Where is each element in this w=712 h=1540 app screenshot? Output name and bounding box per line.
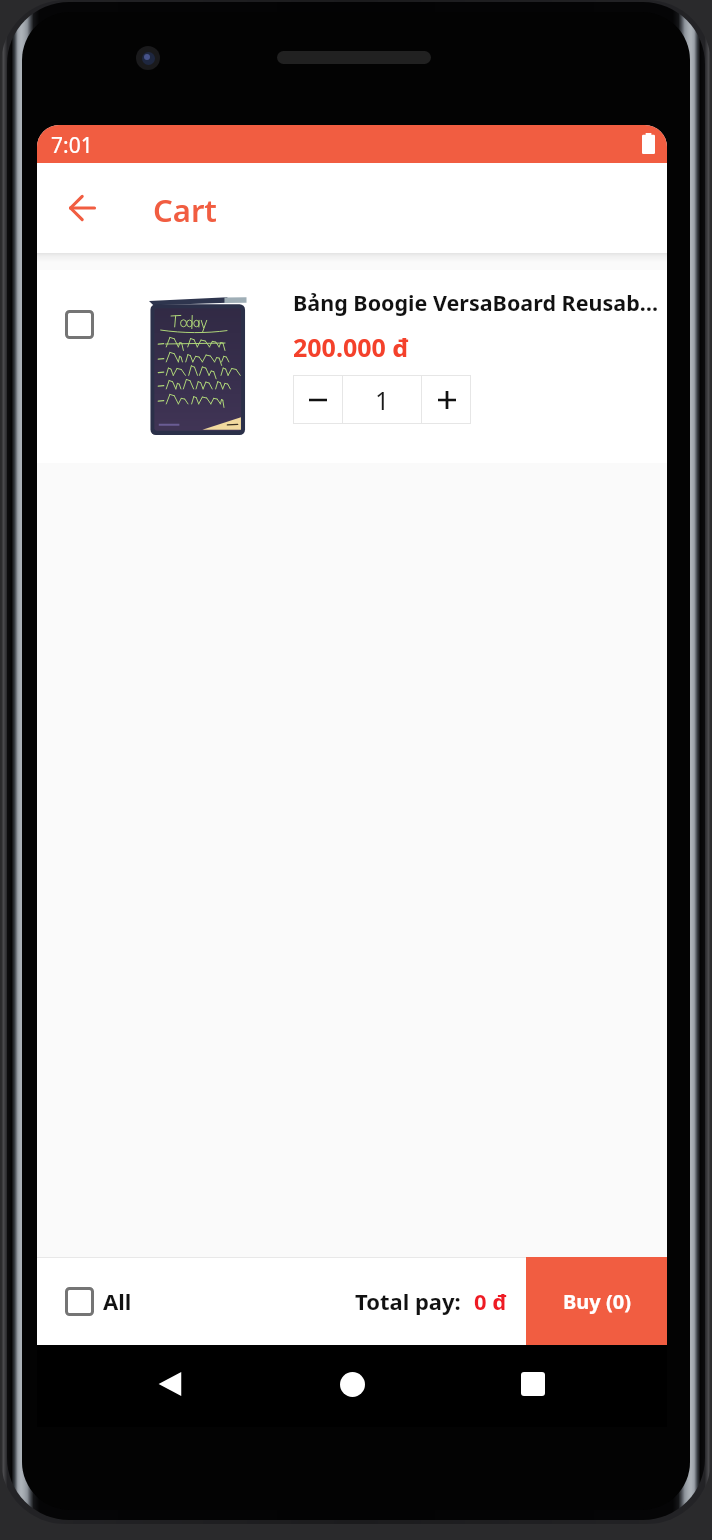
button[interactable]: Increase quantity [422, 375, 471, 424]
button[interactable]: Home [326, 1358, 378, 1410]
staticText: 0 đ [474, 1286, 507, 1316]
staticText: Bảng Boogie VersaBoard Reusab… [293, 288, 659, 317]
button[interactable]: Decrease quantity [293, 375, 342, 424]
staticText: Buy (0) [563, 1288, 631, 1315]
button[interactable]: Recent apps [507, 1358, 559, 1410]
staticText: 7:01 [51, 131, 93, 160]
button[interactable]: Select item [37, 270, 667, 463]
staticText: Cart [153, 189, 217, 231]
staticText: All [103, 1286, 132, 1316]
staticText: 200.000 đ [293, 330, 409, 364]
button[interactable]: Back [58, 184, 106, 232]
button[interactable]: Select item [51, 296, 107, 352]
button[interactable]: Buy (0) [526, 1257, 667, 1345]
button[interactable]: Back [143, 1358, 195, 1410]
staticText: 1 [375, 383, 390, 417]
staticText: Total pay: [355, 1286, 461, 1316]
button[interactable]: All [65, 1286, 132, 1316]
